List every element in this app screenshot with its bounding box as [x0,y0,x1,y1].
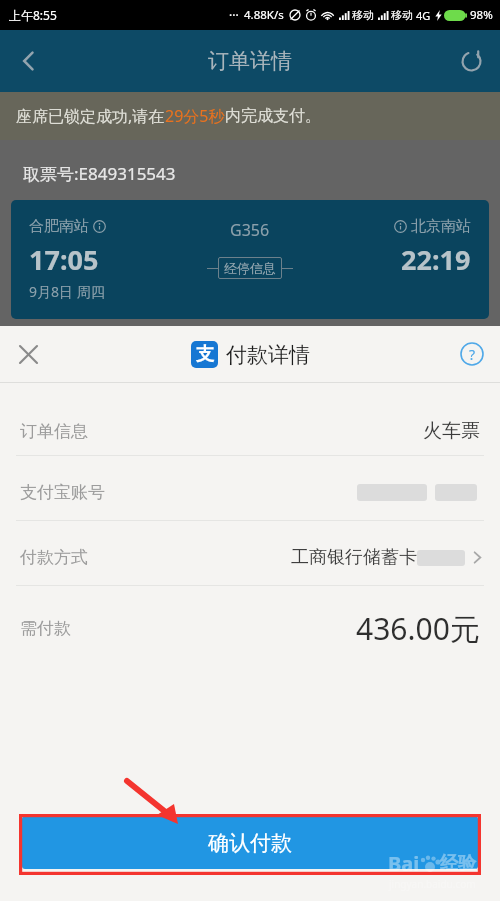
button[interactable]: Back [0,32,58,90]
button[interactable]: 订单信息 [0,407,500,455]
staticText: 北京南站 [411,217,471,236]
staticText: 支 [196,343,214,366]
staticText: 29分5秒 [165,105,225,127]
button[interactable]: 付款方式 [0,529,500,585]
staticText: ? [469,345,476,364]
staticText: 经停信息 [224,260,276,276]
staticText: 上午8:55 [9,7,57,23]
staticText: 需付款 [20,618,71,639]
staticText: 内完成支付。 [225,106,321,126]
staticText: 支付宝账号 [20,482,105,503]
staticText: ··· [229,7,239,23]
staticText: 取票号:E849315543 [23,162,176,185]
staticText: 座席已锁定成功,请在 [16,105,165,127]
staticText: Bai [388,850,420,877]
staticText: 付款详情 [226,342,310,368]
button[interactable]: Help [444,326,500,382]
staticText: 工商银行储蓄卡 [291,546,417,569]
staticText: 436.00元 [356,608,480,649]
staticText: G356 [230,219,270,241]
staticText: 合肥南站 [29,217,89,236]
staticText: 17:05 [29,241,99,278]
button[interactable]: Close [0,326,56,382]
staticText: 付款方式 [20,547,88,568]
staticText: 确认付款 [208,830,292,856]
button[interactable]: 支付宝账号 [0,464,500,520]
staticText: 经验 [440,852,476,875]
staticText: 22:19 [401,241,471,278]
button[interactable]: Refresh [442,32,500,90]
button[interactable]: 确认付款 [22,816,478,869]
staticText: 4G [416,8,431,23]
staticText: 订单详情 [208,48,292,74]
staticText: 移动 [352,8,374,22]
staticText: 订单信息 [20,421,88,442]
button[interactable]: 合肥南站 [11,200,489,319]
staticText: 4.88K/s [244,7,284,23]
staticText: 移动 [391,8,413,22]
staticText: 98% [470,7,493,23]
staticText: 火车票 [423,419,480,443]
staticText: 9月8日 周四 [29,282,105,301]
